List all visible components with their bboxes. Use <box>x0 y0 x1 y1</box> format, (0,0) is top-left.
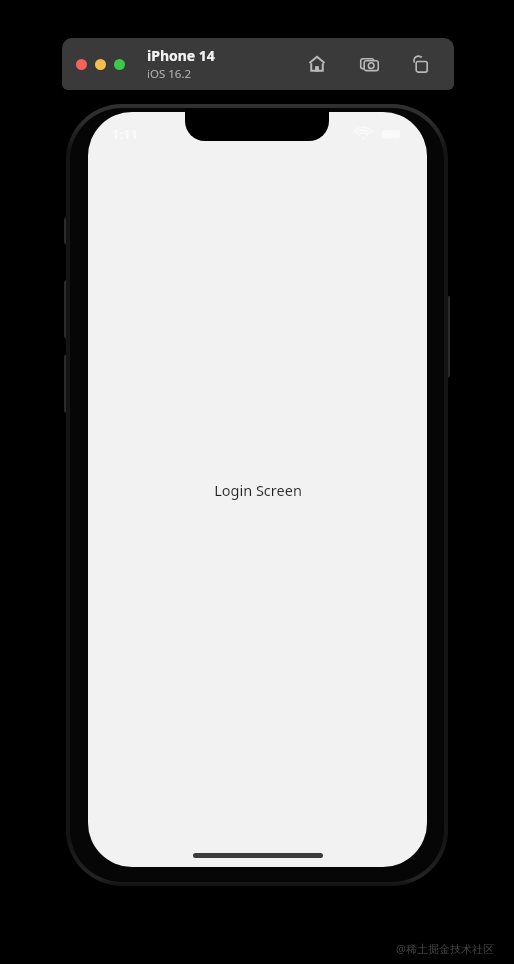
staticText: iOS 16.2 <box>147 66 192 82</box>
staticText: Login Screen <box>214 480 302 500</box>
staticText: iPhone 14 <box>147 46 215 65</box>
button[interactable]: Screenshot <box>356 51 382 77</box>
staticText: @稀土掘金技术社区 <box>396 941 494 956</box>
button[interactable]: Zoom <box>114 59 125 70</box>
button[interactable]: Rotate <box>408 51 434 77</box>
button[interactable]: Close <box>76 59 87 70</box>
button[interactable]: Minimise <box>95 59 106 70</box>
button[interactable]: Home <box>304 51 330 77</box>
